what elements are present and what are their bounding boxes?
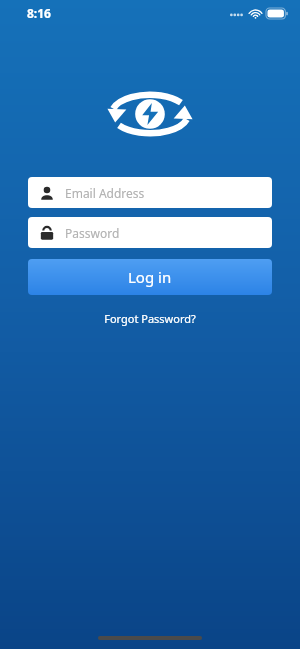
staticText: Password — [65, 225, 120, 241]
button[interactable]: Password — [28, 217, 272, 248]
button[interactable]: Email Address — [28, 177, 272, 208]
staticText: Log in — [128, 267, 172, 287]
staticText: 8:16 — [27, 5, 51, 21]
staticText: Email Address — [65, 185, 145, 201]
button[interactable]: Log in — [28, 259, 272, 295]
staticText: Forgot Password? — [104, 311, 196, 326]
button[interactable]: Forgot Password? — [96, 308, 204, 329]
